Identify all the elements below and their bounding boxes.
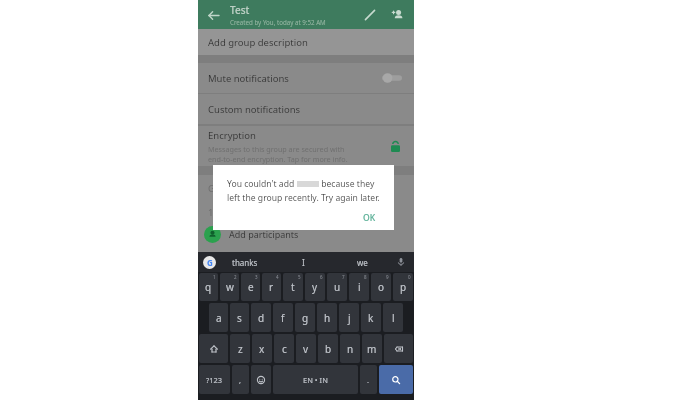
- button[interactable]: d: [251, 303, 271, 332]
- staticText: o: [378, 280, 385, 294]
- staticText: 1: [208, 206, 214, 219]
- staticText: z: [238, 342, 243, 356]
- button[interactable]: Mute notifications: [198, 63, 414, 93]
- button[interactable]: .: [360, 365, 377, 394]
- button[interactable]: Backspace: [384, 334, 413, 363]
- staticText: .: [367, 375, 370, 385]
- staticText: 2: [234, 274, 237, 280]
- button[interactable]: y: [305, 273, 325, 301]
- button[interactable]: b: [318, 334, 338, 363]
- button[interactable]: Search: [379, 365, 413, 394]
- staticText: g: [302, 311, 309, 325]
- button[interactable]: Custom notifications: [198, 94, 414, 124]
- button[interactable]: v: [296, 334, 316, 363]
- button[interactable]: j: [339, 303, 359, 332]
- button[interactable]: h: [317, 303, 337, 332]
- staticText: e: [248, 280, 254, 294]
- staticText: You couldn't add: [227, 178, 297, 190]
- button[interactable]: Add group description: [198, 29, 414, 55]
- staticText: G: [207, 257, 213, 268]
- button[interactable]: m: [362, 334, 382, 363]
- staticText: 0: [408, 274, 411, 280]
- button[interactable]: x: [252, 334, 272, 363]
- button[interactable]: Google: [203, 256, 216, 269]
- button[interactable]: Edit: [360, 5, 380, 25]
- staticText: s: [237, 311, 242, 325]
- staticText: c: [282, 342, 287, 356]
- button[interactable]: ?123: [199, 365, 230, 394]
- staticText: Mute notifications: [208, 72, 289, 85]
- staticText: left the group recently. Try again later…: [227, 192, 380, 204]
- staticText: 6: [320, 274, 323, 280]
- button[interactable]: z: [230, 334, 250, 363]
- staticText: u: [334, 280, 341, 294]
- staticText: Created by You, today at 9:52 AM: [230, 18, 326, 26]
- button[interactable]: Shift: [199, 334, 228, 363]
- staticText: I: [302, 257, 305, 268]
- staticText: Add participants: [229, 228, 299, 240]
- staticText: h: [324, 311, 331, 325]
- button[interactable]: q: [199, 273, 218, 301]
- staticText: Messages to this group are secured with: [208, 144, 345, 154]
- staticText: because they: [319, 178, 375, 190]
- button[interactable]: Encryption: [198, 126, 414, 166]
- staticText: p: [400, 280, 407, 294]
- staticText: Encryption: [208, 129, 256, 142]
- button[interactable]: Add participant: [388, 5, 408, 25]
- staticText: 5: [298, 274, 301, 280]
- staticText: k: [368, 311, 374, 325]
- button[interactable]: w: [220, 273, 239, 301]
- staticText: w: [226, 280, 234, 294]
- staticText: n: [347, 342, 354, 356]
- button[interactable]: f: [273, 303, 293, 332]
- button[interactable]: G: [198, 175, 414, 201]
- button[interactable]: s: [230, 303, 249, 332]
- button[interactable]: u: [327, 273, 347, 301]
- staticText: thanks: [232, 257, 258, 268]
- button[interactable]: Add participants: [198, 223, 414, 245]
- staticText: ,: [239, 375, 242, 385]
- staticText: j: [348, 311, 351, 325]
- button[interactable]: a: [209, 303, 228, 332]
- staticText: 9: [386, 274, 389, 280]
- button[interactable]: Back: [204, 6, 222, 24]
- button[interactable]: r: [262, 273, 281, 301]
- button[interactable]: n: [340, 334, 360, 363]
- button[interactable]: l: [383, 303, 403, 332]
- button[interactable]: 1: [198, 201, 414, 223]
- staticText: ?123: [206, 375, 223, 385]
- staticText: OK: [363, 212, 376, 224]
- staticText: m: [367, 342, 377, 356]
- button[interactable]: Emoji: [251, 365, 271, 394]
- staticText: 1: [213, 274, 216, 280]
- button[interactable]: OK: [357, 209, 382, 227]
- button[interactable]: o: [371, 273, 391, 301]
- staticText: Add group description: [208, 36, 308, 49]
- staticText: a: [216, 311, 222, 325]
- button[interactable]: i: [349, 273, 369, 301]
- staticText: we: [357, 257, 368, 268]
- button[interactable]: thanks: [216, 257, 274, 268]
- staticText: Custom notifications: [208, 103, 301, 116]
- button[interactable]: ,: [232, 365, 249, 394]
- button[interactable]: Voice input: [392, 253, 410, 271]
- staticText: r: [269, 280, 274, 294]
- button[interactable]: t: [283, 273, 303, 301]
- staticText: 8: [364, 274, 367, 280]
- button[interactable]: e: [241, 273, 260, 301]
- staticText: x: [259, 342, 265, 356]
- button[interactable]: g: [295, 303, 315, 332]
- staticText: y: [312, 280, 318, 294]
- staticText: t: [291, 280, 295, 294]
- staticText: i: [358, 280, 361, 294]
- staticText: 4: [276, 274, 279, 280]
- button[interactable]: EN • IN: [273, 365, 358, 394]
- staticText: end-to-end encryption. Tap for more info…: [208, 154, 348, 164]
- button[interactable]: k: [361, 303, 381, 332]
- button[interactable]: I: [274, 257, 333, 268]
- staticText: G: [208, 182, 215, 195]
- button[interactable]: we: [333, 257, 392, 268]
- button[interactable]: c: [274, 334, 294, 363]
- staticText: 7: [342, 274, 345, 280]
- button[interactable]: p: [393, 273, 413, 301]
